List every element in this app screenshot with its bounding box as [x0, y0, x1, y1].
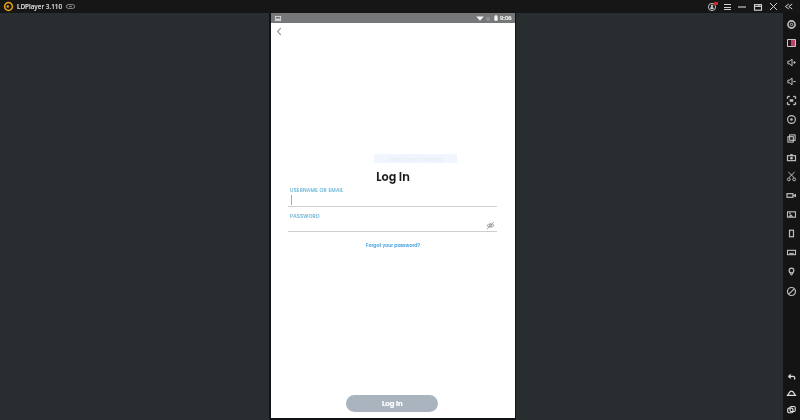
button[interactable]: Shake: [783, 224, 800, 242]
button[interactable]: Restore: [751, 0, 765, 13]
button[interactable]: Collapse: [782, 0, 796, 13]
staticText: LDPlayer 3.110: [17, 2, 63, 11]
button[interactable]: Account: [704, 0, 718, 13]
button[interactable]: Record: [783, 110, 800, 128]
button[interactable]: Fullscreen: [783, 91, 800, 109]
button[interactable]: Forgot your password?: [271, 242, 515, 249]
button[interactable]: Volume up: [783, 53, 800, 71]
button[interactable]: Recents: [783, 400, 800, 418]
staticText: Log In: [271, 169, 515, 185]
button[interactable]: Close: [766, 0, 780, 13]
staticText: 9:06: [500, 14, 512, 22]
button[interactable]: Menu: [720, 0, 734, 13]
button[interactable]: Settings: [783, 15, 800, 33]
button[interactable]: Screenshot: [783, 148, 800, 166]
staticText: Log In: [382, 399, 403, 409]
button[interactable]: Keyboard: [783, 243, 800, 261]
staticText: PASSWORD: [290, 213, 320, 220]
button[interactable]: Log In: [346, 395, 438, 412]
button[interactable]: Back: [270, 23, 286, 39]
button[interactable]: Multi instance: [783, 129, 800, 147]
button[interactable]: Video: [783, 186, 800, 204]
button[interactable]: Minimize: [735, 0, 749, 13]
button[interactable]: Location: [783, 262, 800, 280]
button[interactable]: Home: [783, 384, 800, 402]
button[interactable]: Media: [783, 34, 800, 52]
button[interactable]: Clear: [783, 282, 800, 300]
button[interactable]: Back: [783, 368, 800, 386]
button[interactable]: Cut: [783, 167, 800, 185]
button[interactable]: Volume down: [783, 72, 800, 90]
button[interactable]: Show password: [485, 220, 495, 230]
button[interactable]: Gallery: [783, 205, 800, 223]
staticText: USERNAME OR EMAIL: [290, 187, 344, 194]
